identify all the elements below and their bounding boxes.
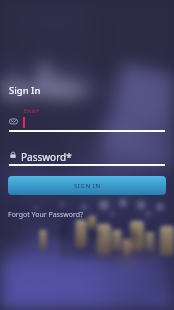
button[interactable]: SIGN IN — [8, 176, 166, 195]
button[interactable]: Forgot Your Password? — [8, 210, 84, 220]
staticText: Sign In — [9, 84, 41, 97]
staticText: Email* — [24, 108, 40, 115]
staticText: SIGN IN — [74, 182, 101, 190]
staticText: Forgot Your Password? — [8, 210, 84, 220]
other: Email — [9, 117, 18, 126]
other: Password — [9, 151, 17, 159]
staticText: Password* — [21, 150, 72, 164]
